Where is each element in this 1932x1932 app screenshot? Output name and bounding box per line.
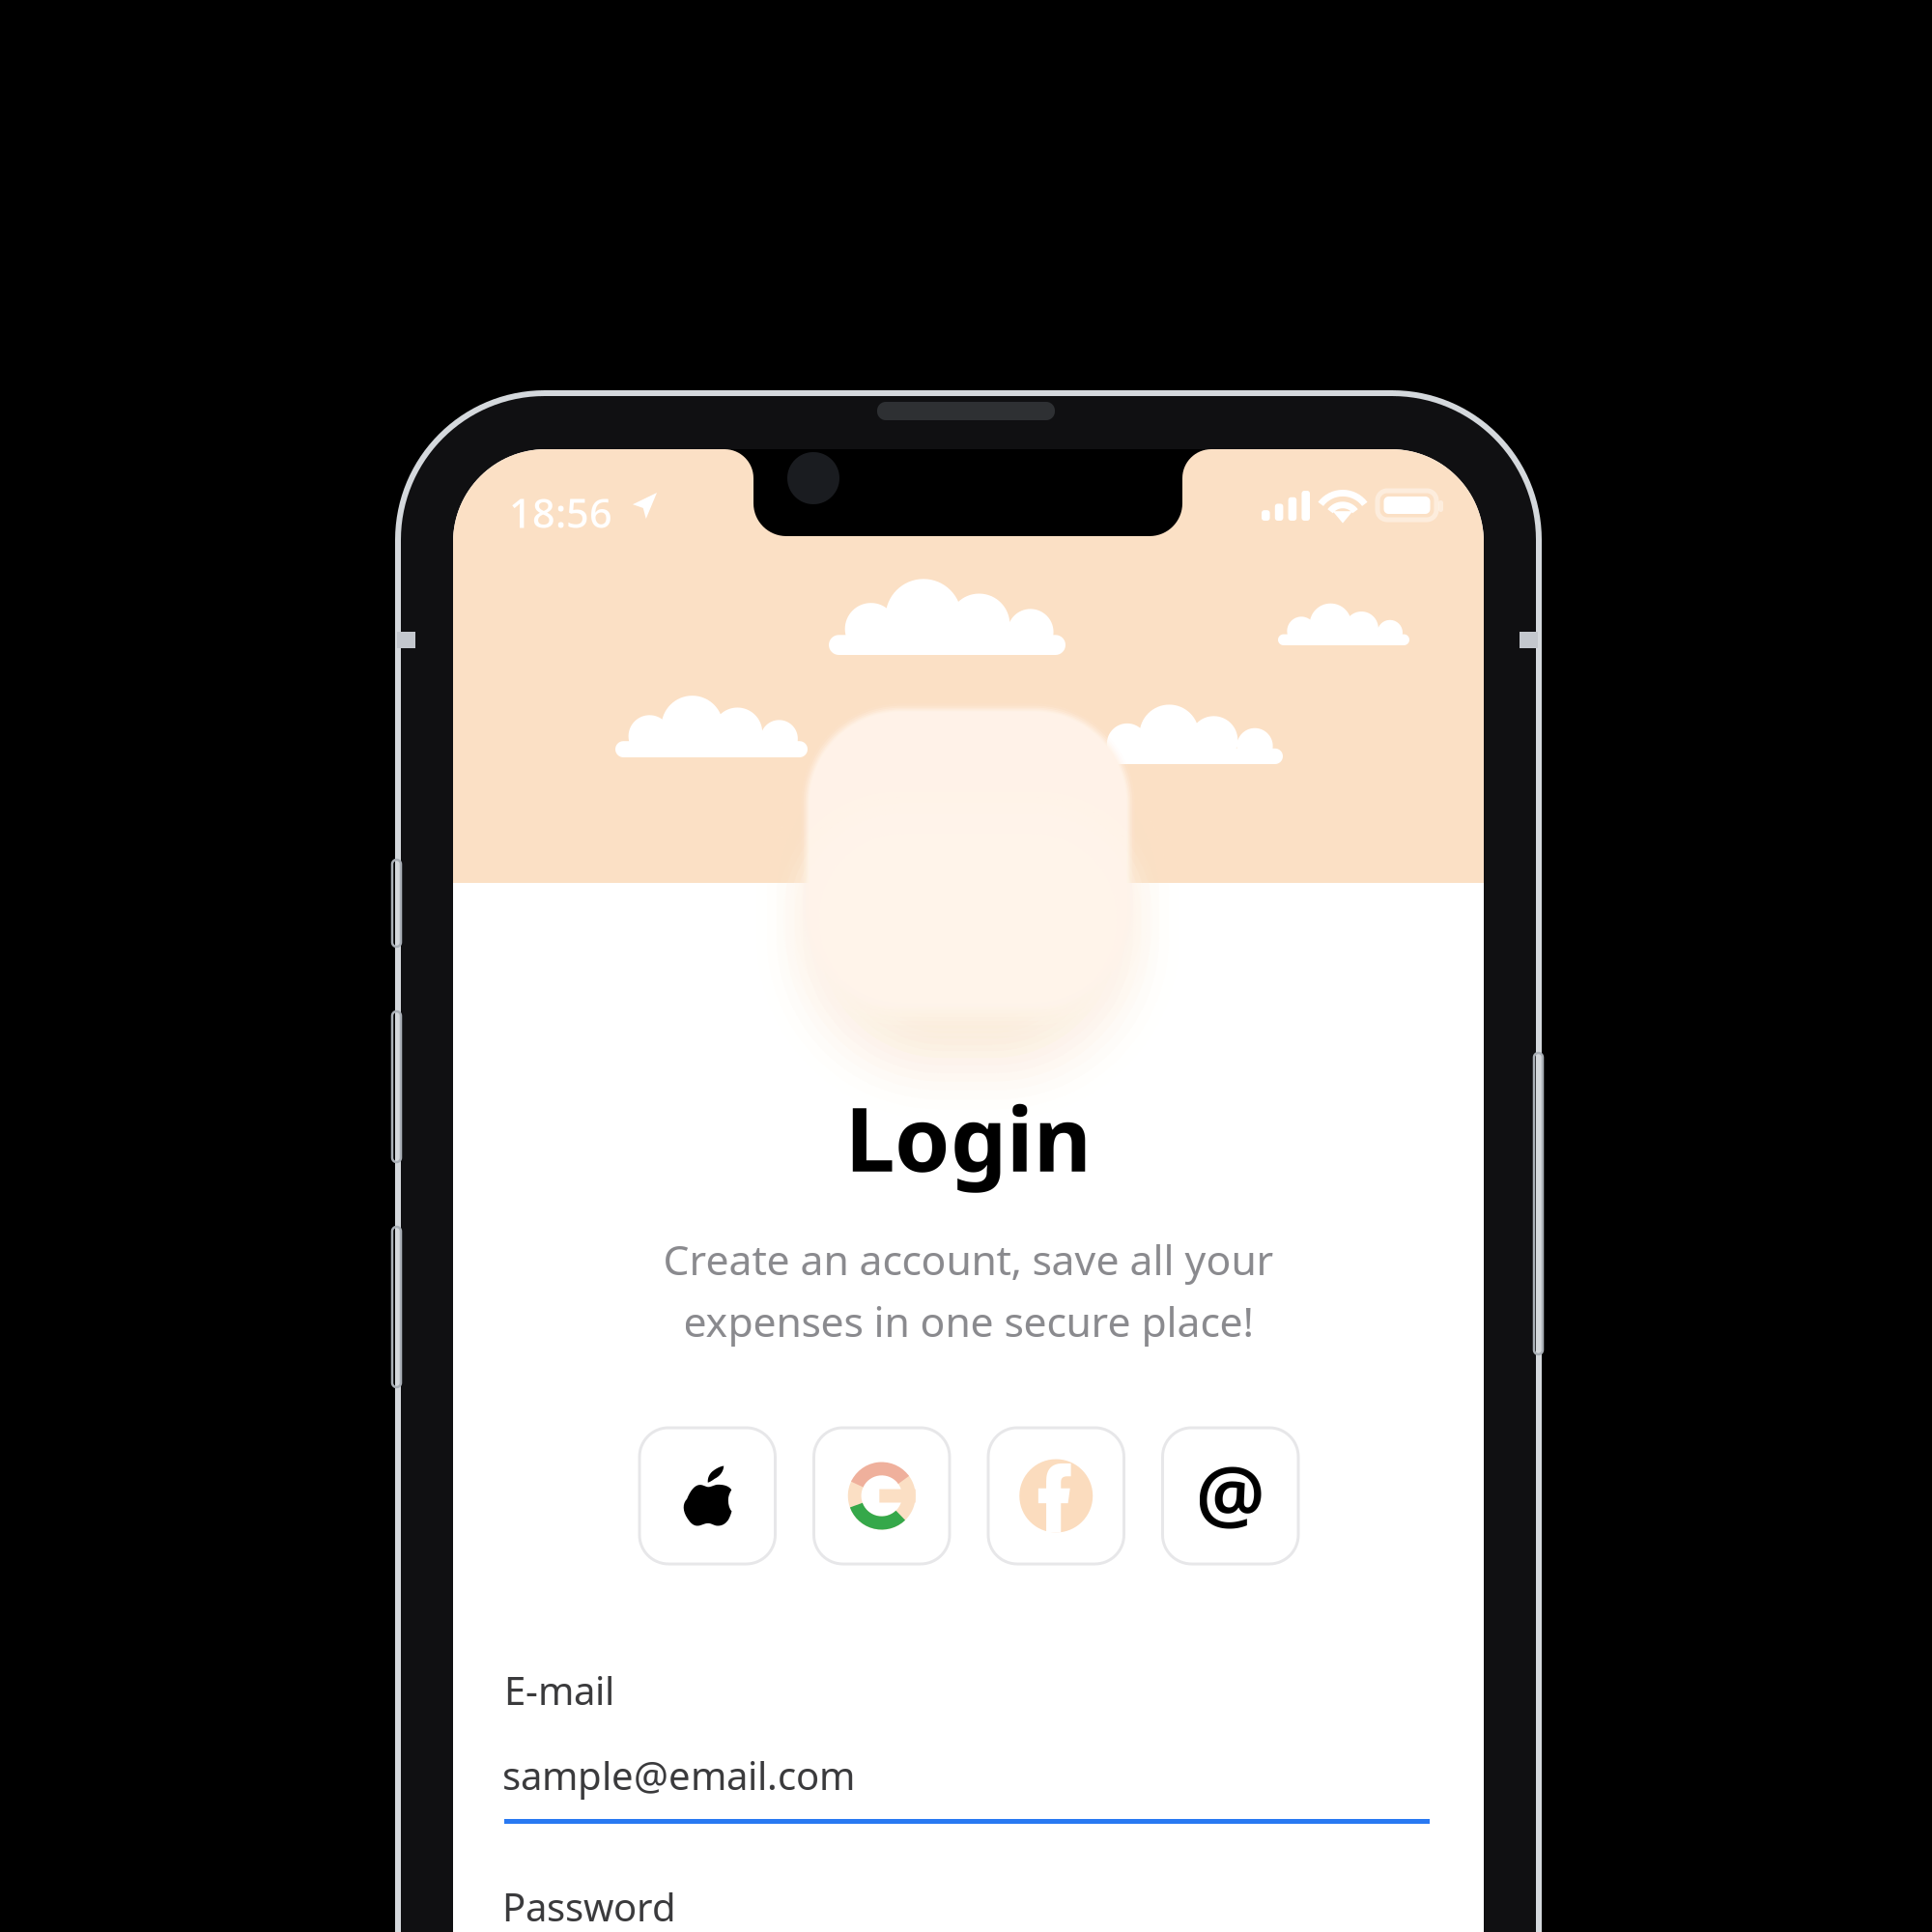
button[interactable]: Sign in with Apple: [639, 1428, 775, 1564]
staticText: Create an account, save all your: [663, 1232, 1274, 1286]
button[interactable]: Sign in with email: [1163, 1428, 1298, 1564]
staticText: Login: [845, 1078, 1092, 1196]
staticText: Password: [502, 1881, 676, 1932]
staticText: @: [1196, 1441, 1265, 1543]
staticText: expenses in one secure place!: [683, 1293, 1253, 1348]
staticText: 18:56: [509, 486, 612, 539]
staticText: sample@email.com: [502, 1749, 855, 1801]
button[interactable]: Sign in with Facebook: [988, 1428, 1124, 1564]
button[interactable]: Sign in with Google: [814, 1428, 950, 1564]
staticText: E-mail: [504, 1664, 614, 1716]
